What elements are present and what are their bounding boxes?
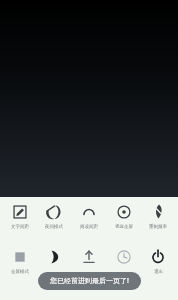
button[interactable]: Quick setting <box>39 248 69 269</box>
button[interactable]: 视觉全屏 <box>109 203 139 230</box>
staticText: 退出 <box>154 269 163 275</box>
staticText: 您已经前进到最后一页了! <box>50 276 129 286</box>
button[interactable]: 夜间模式 <box>39 203 69 230</box>
button[interactable]: Quick setting <box>74 248 104 269</box>
button[interactable]: 全屏模式 <box>5 248 35 275</box>
staticText: 全屏模式 <box>11 269 29 275</box>
button[interactable]: Quick setting <box>109 248 139 269</box>
staticText: 阅读间距 <box>80 224 98 230</box>
staticText: 夜间模式 <box>45 224 63 230</box>
button[interactable]: 阅读间距 <box>74 203 104 230</box>
button[interactable]: 文字间距 <box>5 203 35 230</box>
button[interactable]: 重制频率 <box>143 203 173 230</box>
staticText: 重制频率 <box>149 224 167 230</box>
button[interactable]: 退出 <box>143 248 173 275</box>
staticText: 视觉全屏 <box>115 224 133 230</box>
staticText: 文字间距 <box>11 224 29 230</box>
